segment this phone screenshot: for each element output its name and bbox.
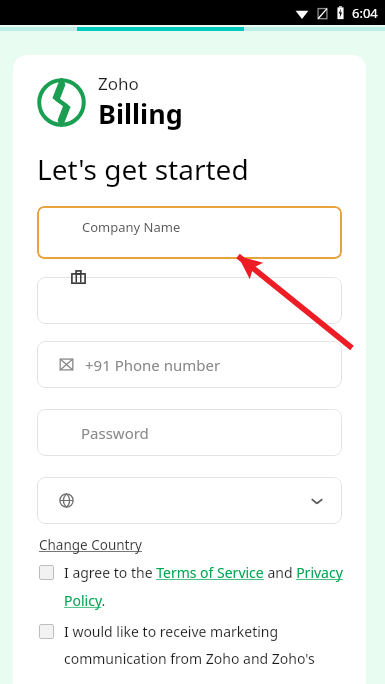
staticText: Billing: [98, 95, 183, 132]
button[interactable]: Country: [37, 477, 342, 524]
staticText: Password: [81, 423, 149, 443]
staticText: Change Country: [39, 536, 142, 554]
staticText: Company Name: [82, 218, 181, 236]
button[interactable]: I agree to the Terms of Service and Priv…: [39, 563, 344, 610]
staticText: Let's get started: [37, 150, 249, 188]
other: Expand country list: [310, 494, 324, 508]
other: Country: [59, 493, 74, 508]
staticText: I would like to receive marketing commun…: [64, 622, 344, 668]
other: Business: [71, 270, 86, 285]
staticText: 6:04: [352, 4, 378, 22]
other: Zoho Billing logo: [35, 76, 88, 129]
button[interactable]: Company Name: [37, 206, 342, 259]
button[interactable]: I would like to receive marketing commun…: [39, 622, 344, 668]
button[interactable]: Change Country: [39, 536, 142, 554]
button[interactable]: [37, 277, 342, 324]
button[interactable]: Password: [37, 409, 342, 456]
staticText: +91 Phone number: [85, 355, 221, 375]
other: Country flag: [59, 357, 74, 372]
staticText: Zoho: [98, 72, 139, 95]
staticText: I agree to the Terms of Service and Priv…: [64, 563, 344, 610]
button[interactable]: Country flag: [37, 341, 342, 388]
